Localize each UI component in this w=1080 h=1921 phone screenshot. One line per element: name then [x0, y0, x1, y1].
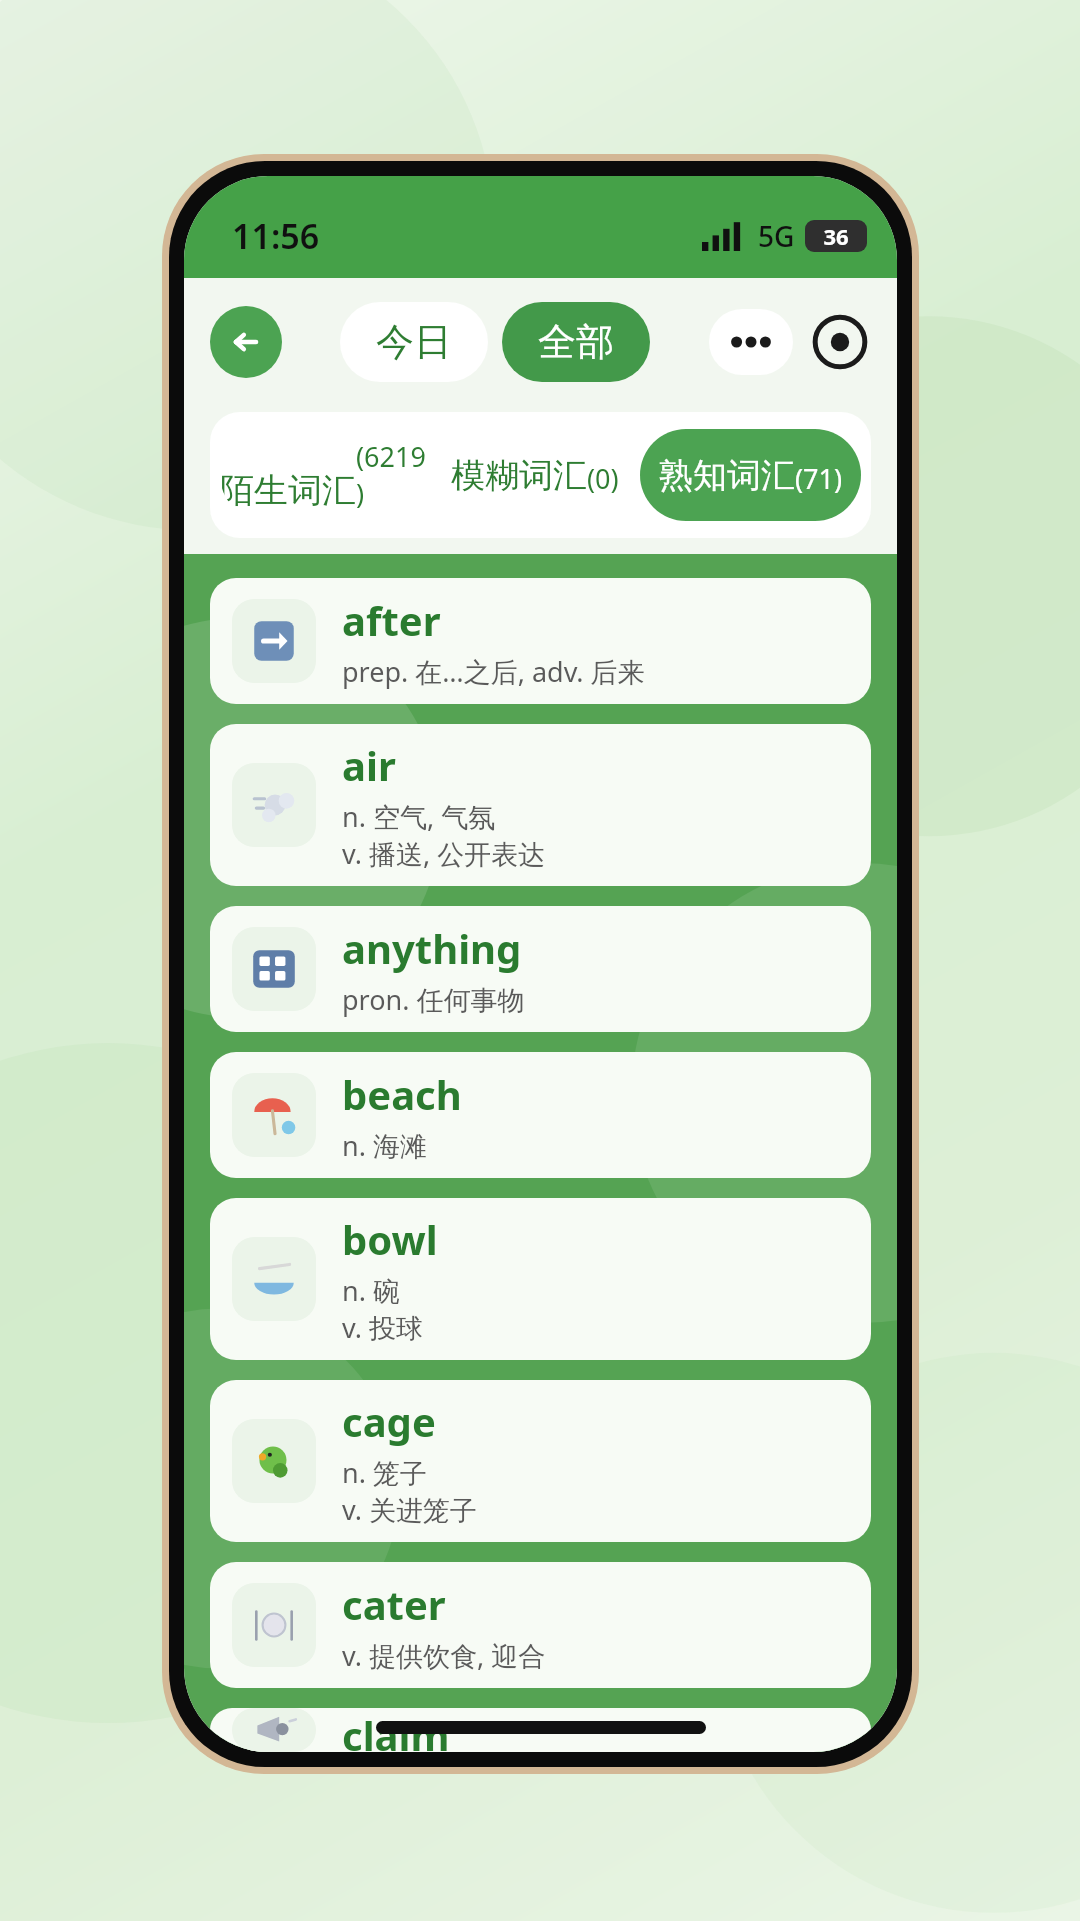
- staticText: prep. 在…之后, adv. 后来: [342, 653, 645, 690]
- staticText: anything: [342, 921, 522, 975]
- button[interactable]: beach: [210, 1052, 871, 1178]
- staticText: (6219): [356, 438, 430, 512]
- button[interactable]: 陌生词汇: [220, 429, 430, 521]
- staticText: n. 碗: [342, 1272, 400, 1309]
- staticText: 模糊词汇: [451, 454, 587, 497]
- staticText: 全部: [538, 318, 614, 366]
- button[interactable]: anything: [210, 906, 871, 1032]
- staticText: n. 空气, 气氛: [342, 798, 496, 835]
- staticText: v. 播送, 公开表达: [342, 835, 546, 872]
- staticText: pron. 任何事物: [342, 981, 525, 1018]
- staticText: bowl: [342, 1212, 438, 1266]
- staticText: 陌生词汇: [220, 469, 356, 512]
- staticText: v. 投球: [342, 1309, 423, 1346]
- staticText: 11:56: [232, 213, 320, 259]
- staticText: v. 关进笼子: [342, 1491, 477, 1528]
- button[interactable]: after: [210, 578, 871, 704]
- button[interactable]: bowl: [210, 1198, 871, 1360]
- staticText: v. 提供饮食, 迎合: [342, 1637, 546, 1674]
- staticText: 36: [823, 221, 849, 251]
- button[interactable]: 模糊词汇: [430, 429, 640, 521]
- button[interactable]: Target: [809, 311, 871, 373]
- button[interactable]: 全部: [502, 302, 650, 382]
- staticText: 今日: [376, 318, 452, 366]
- staticText: air: [342, 738, 396, 792]
- button[interactable]: cage: [210, 1380, 871, 1542]
- button[interactable]: cater: [210, 1562, 871, 1688]
- staticText: cage: [342, 1394, 436, 1448]
- staticText: n. 笼子: [342, 1454, 427, 1491]
- button[interactable]: claim: [210, 1708, 871, 1752]
- button[interactable]: 熟知词汇: [640, 429, 861, 521]
- button[interactable]: 今日: [340, 302, 488, 382]
- staticText: (71): [795, 460, 843, 497]
- staticText: 熟知词汇: [659, 454, 795, 497]
- staticText: cater: [342, 1577, 446, 1631]
- button[interactable]: More options: [709, 309, 793, 375]
- staticText: after: [342, 593, 441, 647]
- staticText: claim: [342, 1708, 450, 1752]
- button[interactable]: air: [210, 724, 871, 886]
- button[interactable]: Back: [210, 306, 282, 378]
- staticText: n. 海滩: [342, 1127, 427, 1164]
- staticText: beach: [342, 1067, 462, 1121]
- staticText: (0): [587, 460, 619, 497]
- staticText: 5G: [758, 217, 795, 255]
